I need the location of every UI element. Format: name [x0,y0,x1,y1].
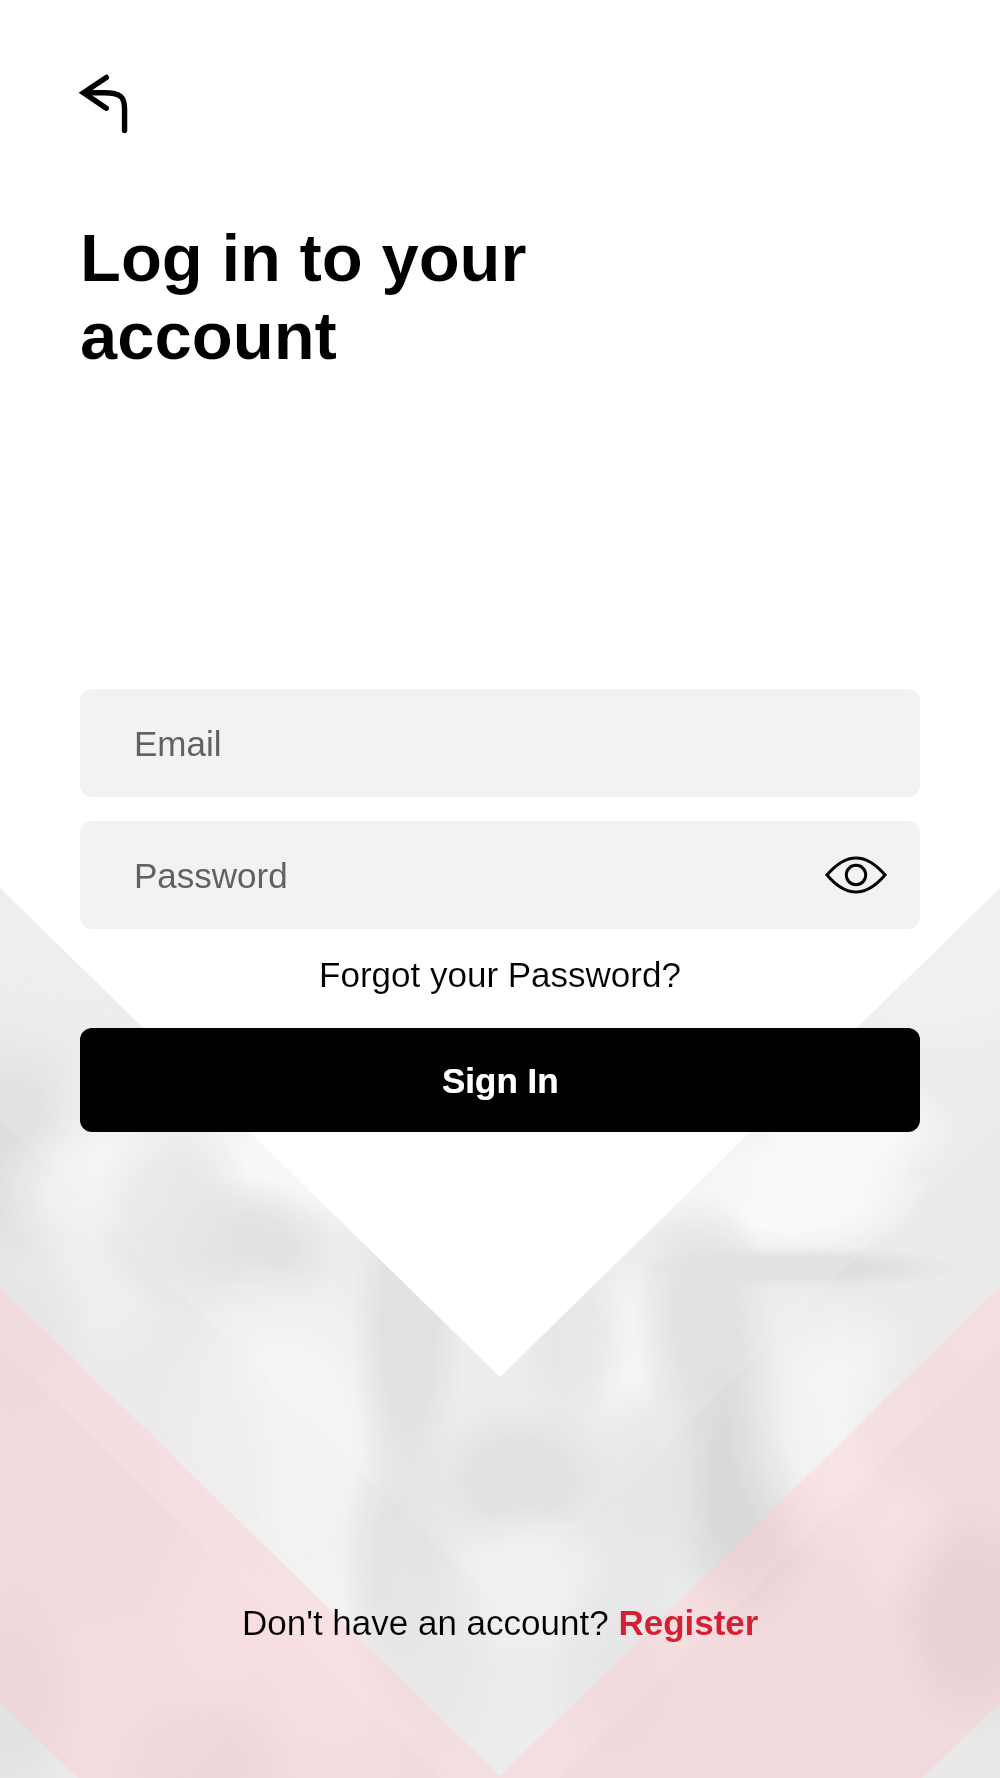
staticText: Log in to your account [80,220,527,374]
button[interactable]: Don't have an account? Register [242,1603,759,1642]
button[interactable]: Email [80,689,920,797]
button[interactable]: Sign In [80,1028,920,1132]
staticText: Password [134,856,288,895]
button[interactable]: Back [63,78,155,170]
staticText: Forgot your Password? [319,955,681,994]
button[interactable]: Password [80,821,920,929]
staticText: Email [134,724,222,763]
staticText: Sign In [442,1061,559,1100]
button[interactable]: Show password [818,837,894,913]
staticText: Don't have an account? Register [242,1603,759,1642]
button[interactable]: Forgot your Password? [80,955,920,994]
